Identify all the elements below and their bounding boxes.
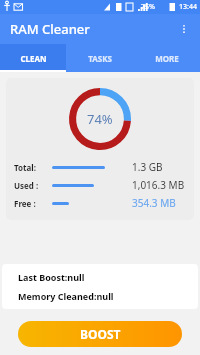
staticText: Last Boost:null bbox=[18, 271, 85, 283]
staticText: 13:44 bbox=[179, 2, 197, 12]
staticText: Used : bbox=[14, 180, 39, 191]
staticText: Free : bbox=[14, 198, 36, 209]
staticText: TASKS bbox=[88, 53, 112, 64]
staticText: MORE bbox=[155, 53, 179, 64]
button[interactable]: MORE bbox=[133, 44, 200, 72]
button[interactable]: More options bbox=[172, 17, 196, 41]
staticText: 1,016.3 MB bbox=[132, 178, 185, 192]
button[interactable]: BOOST bbox=[18, 321, 182, 347]
button[interactable]: TASKS bbox=[66, 44, 133, 72]
staticText: CLEAN bbox=[20, 53, 47, 64]
staticText: 75% bbox=[141, 2, 155, 12]
staticText: 354.3 MB bbox=[132, 196, 176, 210]
staticText: 1.3 GB bbox=[132, 160, 163, 174]
staticText: 74% bbox=[87, 110, 113, 128]
staticText: BOOST bbox=[80, 326, 121, 342]
staticText: RAM Cleaner bbox=[10, 20, 90, 38]
staticText: Total: bbox=[14, 162, 36, 173]
button[interactable]: CLEAN bbox=[0, 44, 66, 72]
staticText: Memory Cleaned:null bbox=[18, 290, 114, 302]
